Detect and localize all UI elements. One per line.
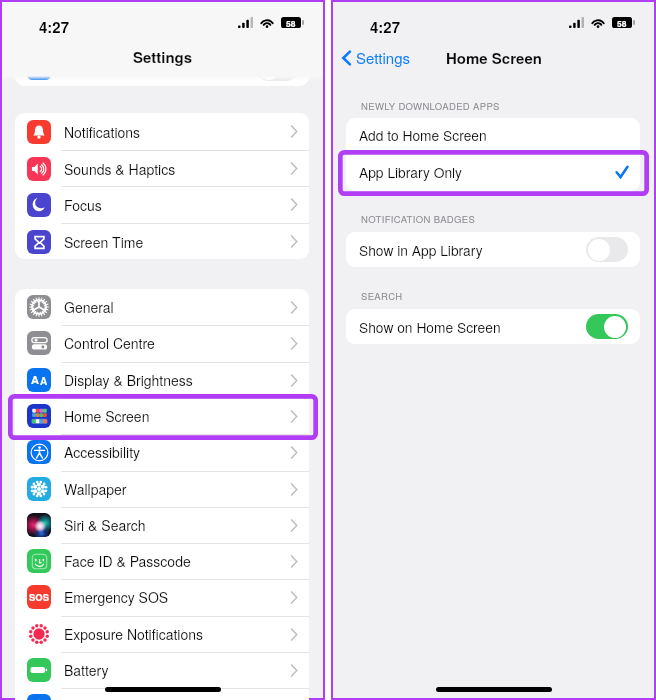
- staticText: Exposure Notifications: [64, 624, 203, 644]
- button[interactable]: Sounds & Haptics: [15, 150, 309, 187]
- button[interactable]: SOS: [15, 579, 309, 615]
- button[interactable]: Battery: [15, 652, 309, 688]
- staticText: Wallpaper: [64, 479, 127, 499]
- staticText: Control Centre: [64, 333, 155, 353]
- button[interactable]: Accessibility: [15, 434, 309, 470]
- staticText: Focus: [64, 195, 102, 215]
- button[interactable]: Home Screen: [15, 398, 309, 434]
- staticText: Battery: [64, 660, 109, 680]
- staticText: Screen Time: [64, 232, 144, 252]
- button[interactable]: Show in App Library: [346, 232, 640, 267]
- button[interactable]: Privacy & Security: [15, 688, 309, 700]
- staticText: Face ID & Passcode: [64, 551, 191, 571]
- button[interactable]: App Library Only: [346, 152, 640, 191]
- staticText: 58: [286, 17, 296, 28]
- button[interactable]: A: [15, 362, 309, 398]
- staticText: NEWLY DOWNLOADED APPS: [361, 99, 500, 113]
- staticText: Home Screen: [446, 47, 542, 68]
- staticText: Add to Home Screen: [359, 125, 487, 145]
- button[interactable]: Wallpaper: [15, 471, 309, 507]
- staticText: Home Screen: [64, 406, 150, 426]
- button[interactable]: Face ID & Passcode: [15, 543, 309, 579]
- button[interactable]: Control Centre: [15, 325, 309, 361]
- button[interactable]: Screen Time: [15, 223, 309, 259]
- staticText: Emergency SOS: [64, 587, 169, 607]
- staticText: App Library Only: [359, 162, 462, 182]
- staticText: SOS: [29, 590, 50, 604]
- staticText: Siri & Search: [64, 515, 146, 535]
- staticText: 58: [617, 17, 627, 28]
- button[interactable]: Exposure Notifications: [15, 616, 309, 652]
- button[interactable]: Switch on: [586, 314, 628, 339]
- button[interactable]: Switch off: [586, 237, 628, 262]
- staticText: 4:27: [370, 16, 401, 37]
- button[interactable]: Add to Home Screen: [346, 118, 640, 152]
- button[interactable]: Show on Home Screen: [346, 309, 640, 344]
- button[interactable]: Siri & Search: [15, 507, 309, 543]
- staticText: Show on Home Screen: [359, 317, 501, 337]
- staticText: SEARCH: [361, 289, 403, 303]
- staticText: Show in App Library: [359, 240, 483, 260]
- staticText: NOTIFICATION BADGES: [361, 212, 476, 226]
- staticText: Display & Brightness: [64, 370, 193, 390]
- staticText: A: [40, 374, 48, 388]
- staticText: Settings: [356, 47, 411, 68]
- button[interactable]: Settings: [333, 41, 419, 74]
- button[interactable]: General: [15, 289, 309, 325]
- staticText: Sounds & Haptics: [64, 159, 176, 179]
- staticText: Notifications: [64, 122, 141, 142]
- button[interactable]: Focus: [15, 186, 309, 223]
- staticText: General: [64, 297, 114, 317]
- staticText: 4:27: [39, 16, 70, 37]
- staticText: Accessibility: [64, 442, 141, 462]
- staticText: A: [31, 372, 39, 388]
- staticText: Settings: [133, 46, 193, 67]
- button[interactable]: Notifications: [15, 113, 309, 150]
